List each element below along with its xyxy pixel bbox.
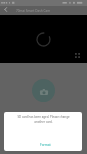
button[interactable]: Fullscreen	[75, 53, 80, 58]
button[interactable]: Take photo	[32, 79, 55, 102]
staticText: 70mai Smart Dash Cam	[16, 9, 51, 13]
staticText: SD card has been aged. Please change ano…	[14, 115, 73, 124]
button[interactable]: Format	[9, 140, 81, 150]
button[interactable]: Back	[0, 6, 16, 15]
staticText: Format	[40, 143, 51, 147]
